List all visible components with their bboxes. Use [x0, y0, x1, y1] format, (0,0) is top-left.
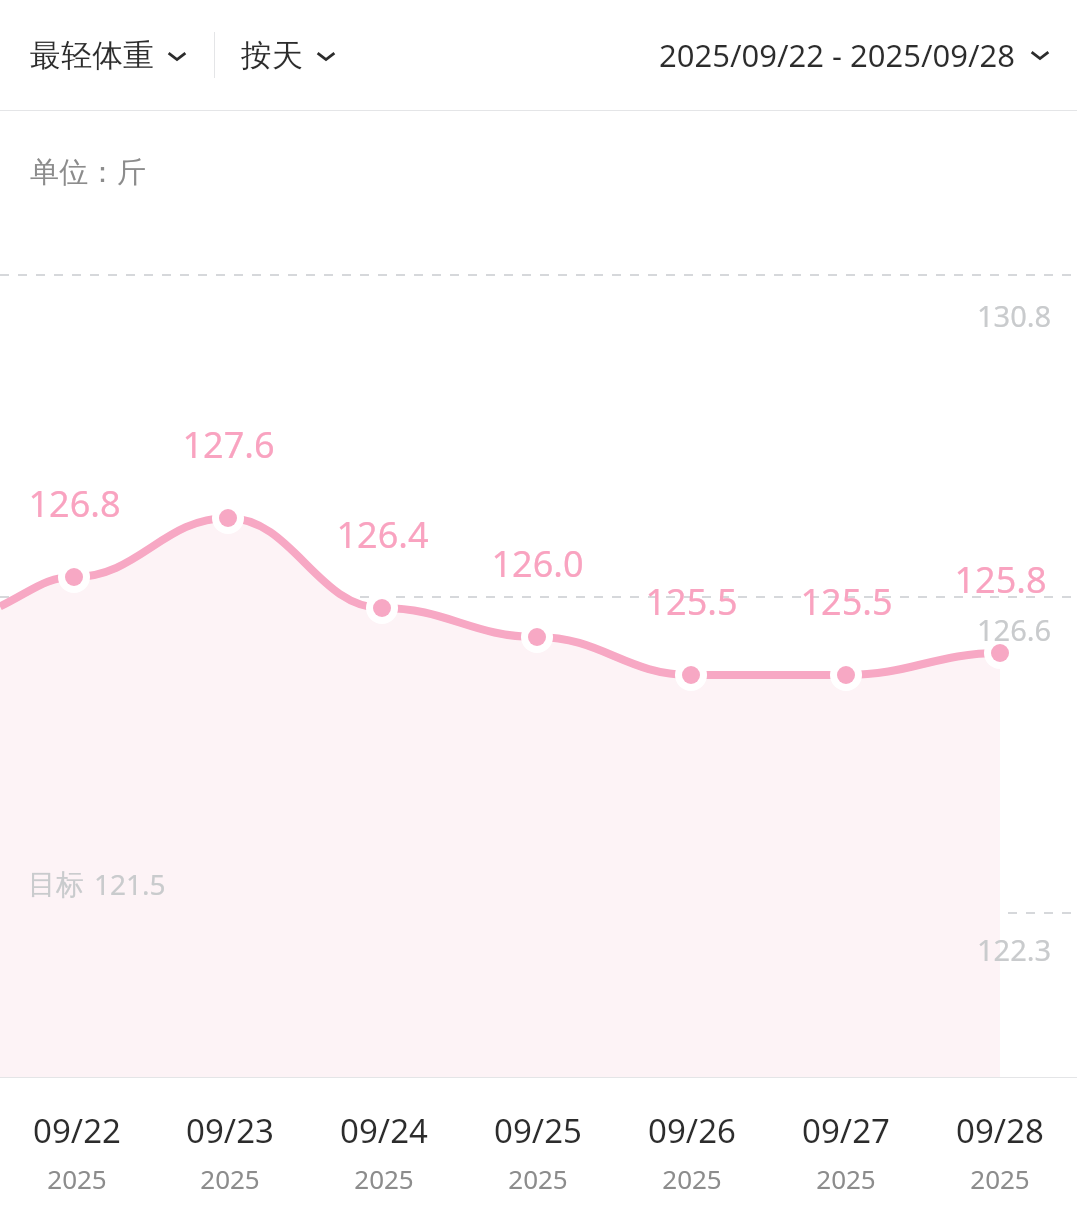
- staticText: 126.6: [977, 610, 1052, 649]
- staticText: 126.0: [491, 539, 584, 588]
- staticText: 最轻体重: [30, 36, 154, 75]
- button[interactable]: 09/28: [923, 1078, 1077, 1225]
- button[interactable]: 2025/09/22 - 2025/09/28: [659, 22, 1051, 88]
- button[interactable]: 最轻体重: [30, 24, 188, 87]
- button[interactable]: 09/26: [615, 1078, 769, 1225]
- button[interactable]: 09/22: [0, 1078, 153, 1225]
- button[interactable]: 按天: [241, 24, 337, 87]
- staticText: 09/28: [956, 1108, 1044, 1153]
- staticText: 122.3: [977, 930, 1052, 969]
- staticText: 2025: [816, 1161, 876, 1196]
- staticText: 126.8: [28, 479, 121, 528]
- button[interactable]: 09/25: [461, 1078, 615, 1225]
- staticText: 130.8: [977, 296, 1052, 335]
- staticText: 126.4: [336, 510, 429, 559]
- staticText: 127.6: [182, 420, 275, 469]
- staticText: 09/23: [186, 1108, 274, 1153]
- staticText: 09/24: [340, 1108, 428, 1153]
- staticText: 2025: [47, 1161, 107, 1196]
- staticText: 2025/09/22 - 2025/09/28: [659, 34, 1015, 76]
- staticText: 09/25: [494, 1108, 582, 1153]
- staticText: 125.5: [800, 577, 893, 626]
- staticText: 125.5: [645, 577, 738, 626]
- staticText: 2025: [508, 1161, 568, 1196]
- staticText: 2025: [662, 1161, 722, 1196]
- staticText: 2025: [200, 1161, 260, 1196]
- staticText: 09/26: [648, 1108, 736, 1153]
- button[interactable]: 09/24: [307, 1078, 461, 1225]
- staticText: 按天: [241, 36, 303, 75]
- button[interactable]: 09/27: [769, 1078, 923, 1225]
- staticText: 目标: [28, 867, 84, 902]
- staticText: 2025: [354, 1161, 414, 1196]
- staticText: 09/27: [802, 1108, 890, 1153]
- staticText: 125.8: [954, 555, 1047, 604]
- staticText: 单位：斤: [30, 154, 146, 191]
- staticText: 09/22: [33, 1108, 121, 1153]
- staticText: 121.5: [94, 865, 166, 903]
- staticText: 2025: [970, 1161, 1030, 1196]
- button[interactable]: 09/23: [153, 1078, 307, 1225]
